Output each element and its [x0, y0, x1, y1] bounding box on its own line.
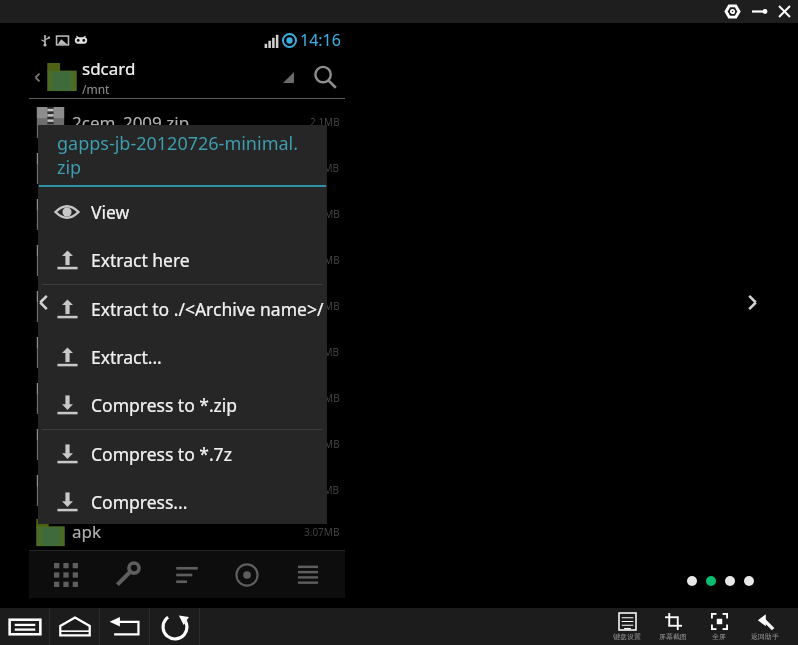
staticText: 2cem_2009.zip	[72, 111, 190, 134]
staticText: 1.1MB	[310, 437, 340, 451]
button[interactable]: Next	[740, 290, 764, 314]
staticText: 118MB	[307, 207, 340, 221]
button[interactable]: Select	[224, 552, 270, 598]
button[interactable]: 2cem_2009.zip	[29, 99, 345, 145]
button[interactable]: 键盘设置	[604, 608, 650, 645]
button[interactable]: update.zip	[29, 329, 345, 375]
staticText: 返回助手	[751, 632, 779, 641]
staticText: 屏幕截图	[659, 632, 687, 641]
button[interactable]: Search	[307, 59, 343, 95]
button[interactable]: gapps-jb-min.zip	[29, 145, 345, 191]
button[interactable]: backup.zip	[29, 237, 345, 283]
staticText: Extract to ./<Archive name>/	[91, 297, 327, 321]
staticText: update.zip	[72, 341, 157, 364]
staticText: 58MB	[312, 483, 340, 497]
staticText: 2.1MB	[310, 115, 340, 129]
staticText: gapps-jb-min.zip	[72, 157, 206, 180]
button[interactable]: 全屏	[696, 608, 742, 645]
button[interactable]: apk	[29, 513, 345, 550]
button[interactable]: View	[38, 188, 327, 236]
staticText: themes.zip	[72, 387, 160, 410]
button[interactable]: data.zip	[29, 467, 345, 513]
button[interactable]: Extract...	[38, 333, 327, 381]
button[interactable]: fonts.zip	[29, 421, 345, 467]
button[interactable]: Sort order	[273, 62, 303, 92]
staticText: sdcard	[82, 57, 136, 80]
button[interactable]: cm-10.zip	[29, 191, 345, 237]
staticText: gapps-jb-20120726-minimal. zip	[57, 131, 299, 179]
button[interactable]: Rotate	[150, 608, 200, 645]
button[interactable]: Sort	[164, 552, 210, 598]
staticText: /mnt	[82, 81, 110, 97]
staticText: 3.07MB	[304, 525, 340, 539]
staticText: 14:16	[300, 29, 341, 51]
staticText: 24MB	[312, 345, 340, 359]
staticText: apk	[72, 520, 102, 543]
button[interactable]: Close	[773, 0, 796, 23]
button[interactable]: Previous	[31, 290, 55, 314]
button[interactable]: 返回助手	[742, 608, 788, 645]
button[interactable]: Tools	[104, 552, 150, 598]
staticText: 3.4MB	[310, 391, 340, 405]
button[interactable]: Compress...	[38, 478, 327, 526]
button[interactable]: Compress to *.zip	[38, 381, 327, 429]
staticText: Compress to *.zip	[91, 393, 327, 417]
staticText: data.zip	[72, 479, 136, 502]
staticText: 47MB	[312, 161, 340, 175]
staticText: 全屏	[712, 632, 726, 641]
button[interactable]: Back	[100, 608, 150, 645]
button[interactable]: Settings	[721, 0, 744, 23]
button[interactable]: recovery.zip	[29, 283, 345, 329]
staticText: View	[91, 200, 327, 224]
button[interactable]: Extract here	[38, 236, 327, 284]
staticText: 键盘设置	[613, 632, 641, 641]
staticText: 9.8MB	[310, 253, 340, 267]
staticText: backup.zip	[72, 249, 158, 272]
button[interactable]: Compress to *.7z	[38, 430, 327, 478]
button[interactable]: Minimize	[747, 0, 770, 23]
button[interactable]: Menu	[285, 552, 331, 598]
staticText: Compress to *.7z	[91, 442, 327, 466]
button[interactable]: Extract to ./<Archive name>/	[38, 285, 327, 333]
staticText: Extract here	[91, 248, 327, 272]
staticText: recovery.zip	[72, 295, 167, 318]
button[interactable]: 屏幕截图	[650, 608, 696, 645]
staticText: Compress...	[91, 490, 327, 514]
staticText: Extract...	[91, 345, 327, 369]
button[interactable]: Home	[50, 608, 100, 645]
staticText: 6.2MB	[310, 299, 340, 313]
button[interactable]: Recents	[0, 608, 50, 645]
staticText: cm-10.zip	[72, 203, 149, 226]
button[interactable]: Grid view	[43, 552, 89, 598]
button[interactable]: themes.zip	[29, 375, 345, 421]
staticText: fonts.zip	[72, 433, 141, 456]
